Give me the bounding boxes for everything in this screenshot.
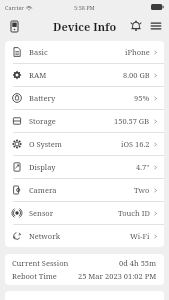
staticText: Camera — [29, 185, 57, 195]
button[interactable]: Storage — [5, 110, 164, 132]
staticText: 8.00 GB — [123, 70, 150, 80]
staticText: 4.7" — [136, 162, 150, 172]
staticText: Reboot Time — [12, 271, 57, 281]
button[interactable]: Basic — [5, 41, 164, 63]
staticText: 150.57 GB — [114, 116, 150, 126]
staticText: Storage — [29, 116, 56, 126]
staticText: Touch ID — [118, 208, 150, 218]
staticText: RAM — [29, 70, 47, 80]
staticText: 95% — [134, 93, 150, 103]
button[interactable]: Network — [5, 225, 164, 247]
button[interactable]: Device — [4, 16, 24, 36]
button[interactable]: O System — [5, 133, 164, 155]
staticText: Battery — [29, 93, 56, 103]
staticText: O System — [29, 139, 62, 149]
staticText: iPhone — [125, 47, 150, 57]
staticText: Current Session — [12, 258, 69, 268]
button[interactable]: Display — [5, 156, 164, 178]
staticText: Wi-Fi — [130, 231, 150, 241]
staticText: Display — [29, 162, 56, 172]
staticText: Basic — [29, 47, 48, 57]
staticText: 0d 4h 55m — [119, 258, 157, 268]
button[interactable]: Camera — [5, 179, 164, 201]
staticText: iOS 16.2 — [121, 139, 150, 149]
button[interactable]: Alarm — [126, 16, 146, 36]
staticText: Carrier — [5, 4, 24, 11]
staticText: Device Info — [53, 19, 117, 34]
button[interactable]: Menu — [146, 16, 166, 36]
staticText: 5:58 PM — [74, 4, 95, 11]
button[interactable]: RAM — [5, 64, 164, 86]
staticText: 25 Mar 2023 01:02 PM — [78, 271, 157, 281]
staticText: Two — [134, 185, 150, 195]
staticText: Network — [29, 231, 61, 241]
button[interactable]: Sensor — [5, 202, 164, 224]
button[interactable]: Battery — [5, 87, 164, 109]
staticText: Sensor — [29, 208, 54, 218]
